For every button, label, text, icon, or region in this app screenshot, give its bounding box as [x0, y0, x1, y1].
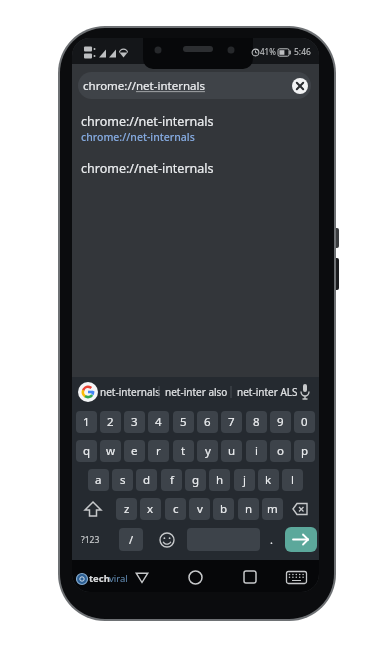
staticText: 3 [131, 414, 138, 430]
button[interactable]: x [140, 498, 161, 520]
button[interactable]: chrome://net-internals [72, 156, 319, 182]
staticText: n [245, 501, 253, 517]
staticText: l [291, 472, 294, 488]
staticText: chrome://net-internals [81, 113, 214, 130]
button[interactable]: h [209, 469, 230, 491]
button[interactable]: n [238, 498, 259, 520]
button[interactable]: o [270, 440, 291, 462]
staticText: g [192, 472, 200, 488]
button[interactable]: c [165, 498, 186, 520]
button[interactable]: 5 [173, 411, 194, 433]
staticText: net-inter also [165, 385, 228, 399]
staticText: m [267, 501, 278, 517]
button[interactable]: 8 [246, 411, 267, 433]
button[interactable]: s [112, 469, 133, 491]
staticText: 5 [180, 414, 187, 430]
staticText: a [95, 472, 102, 488]
staticText: 7 [228, 414, 235, 430]
button[interactable]: 3 [124, 411, 145, 433]
button[interactable]: 7 [221, 411, 242, 433]
button[interactable] [78, 382, 98, 402]
button[interactable]: chrome://net-internals [78, 72, 311, 99]
staticText: y [205, 443, 211, 459]
button[interactable]: e [124, 440, 145, 462]
button[interactable]: 0 [294, 411, 315, 433]
staticText: 4 [155, 414, 162, 430]
button[interactable] [156, 529, 178, 551]
button[interactable]: q [76, 440, 97, 462]
staticText: c [173, 501, 179, 517]
staticText: b [220, 501, 228, 517]
button[interactable]: k [258, 469, 279, 491]
staticText: e [131, 443, 138, 459]
button[interactable]: w [100, 440, 121, 462]
staticText: 2 [107, 414, 114, 430]
button[interactable]: r [148, 440, 169, 462]
button[interactable] [188, 570, 203, 585]
button[interactable] [292, 78, 308, 94]
staticText: 6 [204, 414, 211, 430]
button[interactable]: g [185, 469, 206, 491]
button[interactable]: . [264, 528, 278, 551]
staticText: t [181, 443, 186, 459]
button[interactable]: a [88, 469, 109, 491]
staticText: r [156, 443, 161, 459]
staticText: 41% [260, 46, 276, 57]
button[interactable]: f [161, 469, 182, 491]
button[interactable]: 6 [197, 411, 218, 433]
staticText: i [255, 443, 258, 459]
staticText: ?123 [81, 534, 100, 546]
staticText: s [120, 472, 126, 488]
button[interactable]: j [234, 469, 255, 491]
button[interactable] [284, 498, 314, 520]
staticText: z [124, 501, 130, 517]
staticText: d [143, 472, 151, 488]
staticText: u [228, 443, 236, 459]
button[interactable]: 9 [270, 411, 291, 433]
button[interactable] [286, 571, 307, 584]
button[interactable]: / [119, 528, 143, 551]
staticText: h [216, 472, 224, 488]
button[interactable]: 4 [148, 411, 169, 433]
button[interactable]: 1 [76, 411, 97, 433]
button[interactable] [78, 498, 108, 520]
staticText: q [83, 443, 91, 459]
button[interactable] [298, 383, 312, 401]
button[interactable]: u [221, 440, 242, 462]
button[interactable] [135, 572, 149, 584]
staticText: o [277, 443, 284, 459]
button[interactable]: l [282, 469, 303, 491]
staticText: w [106, 443, 116, 459]
staticText: net-internals [100, 385, 160, 399]
button[interactable] [285, 527, 317, 552]
staticText: chrome://net-internals [81, 160, 214, 177]
button[interactable]: chrome://net-internals [72, 108, 319, 150]
staticText: chrome://net-internals [83, 78, 205, 94]
staticText: net-inter ALS [237, 385, 298, 399]
staticText: x [147, 501, 154, 517]
button[interactable]: i [246, 440, 267, 462]
staticText: 5:46 [294, 46, 311, 58]
staticText: k [265, 472, 272, 488]
button[interactable]: m [262, 498, 283, 520]
button[interactable]: y [197, 440, 218, 462]
button[interactable]: v [189, 498, 210, 520]
button[interactable]: z [116, 498, 137, 520]
staticText: viral [109, 572, 128, 585]
staticText: f [170, 472, 174, 488]
button[interactable]: t [173, 440, 194, 462]
staticText: 0 [301, 414, 308, 430]
button[interactable]: ?123 [74, 527, 106, 552]
staticText: j [243, 472, 246, 488]
button[interactable]: b [213, 498, 234, 520]
staticText: . [270, 532, 273, 547]
button[interactable]: 2 [100, 411, 121, 433]
staticText: v [197, 501, 203, 517]
staticText: chrome://net-internals [81, 130, 195, 144]
button[interactable]: p [294, 440, 315, 462]
staticText: 8 [253, 414, 260, 430]
button[interactable]: d [136, 469, 157, 491]
button[interactable] [243, 570, 257, 584]
staticText: 1 [83, 414, 90, 430]
